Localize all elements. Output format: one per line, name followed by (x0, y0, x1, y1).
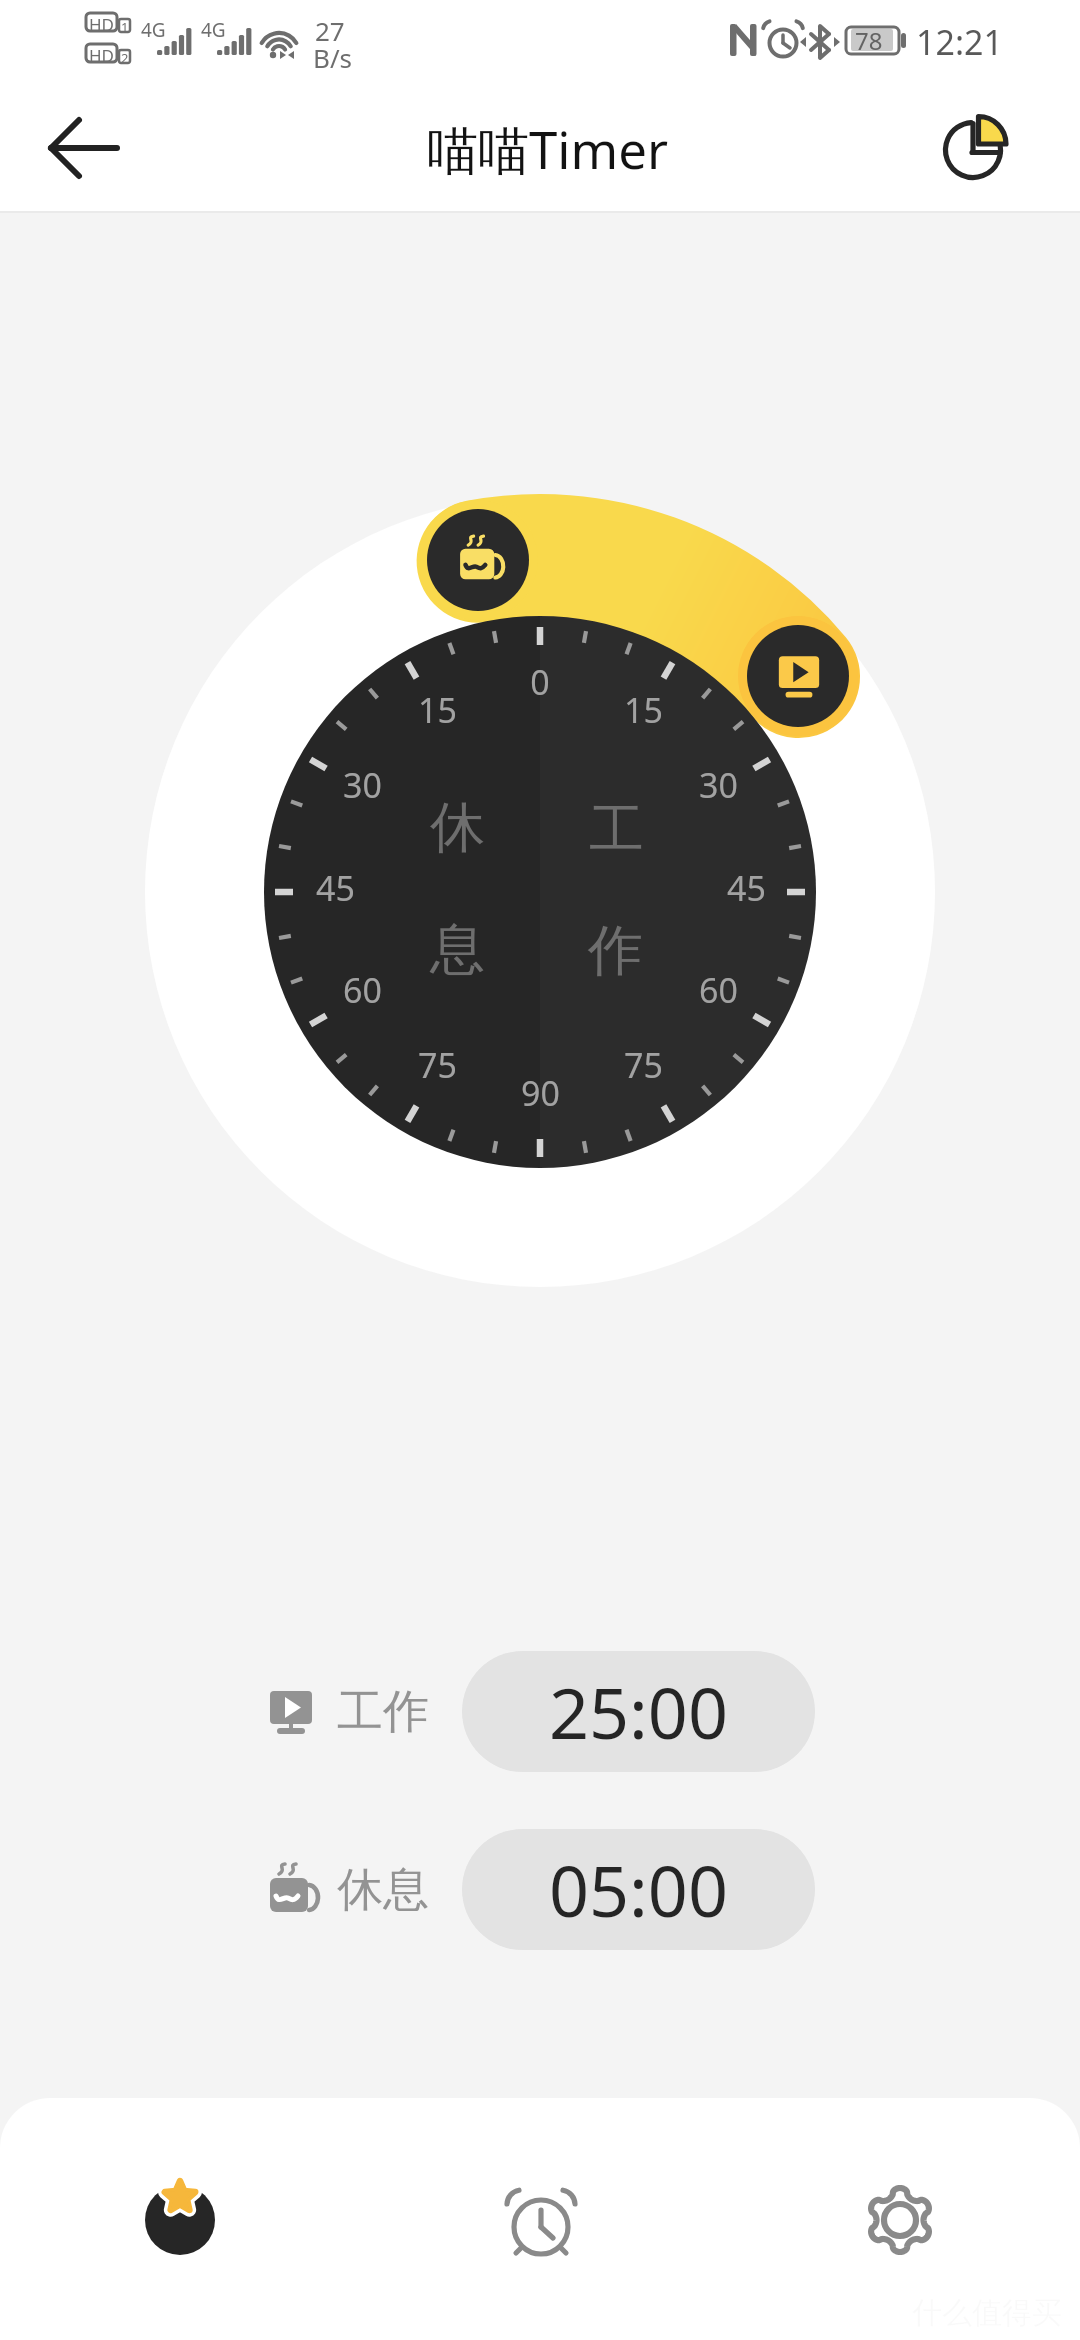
button[interactable]: Back (24, 88, 144, 208)
button[interactable]: Break duration (416, 498, 540, 622)
staticText: 60 (699, 967, 738, 1013)
staticText: 05:00 (549, 1842, 728, 1937)
staticText: 1 (121, 18, 129, 36)
staticText: 作 (588, 916, 643, 985)
staticText: HD (89, 44, 115, 67)
staticText: 0 (530, 659, 550, 705)
button[interactable]: Settings (854, 2174, 946, 2266)
button[interactable]: 休息 (262, 1819, 822, 1960)
staticText: 2 (121, 49, 129, 67)
staticText: 60 (343, 967, 382, 1013)
button[interactable]: Focus (134, 2174, 226, 2266)
staticText: 30 (699, 762, 738, 808)
button[interactable]: 工作 (262, 1641, 822, 1782)
staticText: 工 (589, 795, 644, 864)
staticText: 75 (418, 1042, 457, 1088)
staticText: 休息 (337, 1861, 429, 1919)
staticText: 15 (624, 687, 663, 733)
staticText: 78 (855, 24, 883, 57)
staticText: 90 (521, 1070, 560, 1116)
staticText: 休 (430, 793, 485, 862)
staticText: 息 (430, 915, 485, 984)
button[interactable]: Work duration (736, 614, 860, 738)
staticText: 4G (201, 17, 226, 43)
staticText: 喵喵Timer (427, 114, 669, 184)
staticText: 工作 (337, 1683, 429, 1741)
staticText: 4G (141, 17, 166, 43)
staticText: 12:21 (916, 19, 1003, 65)
staticText: 15 (418, 687, 457, 733)
staticText: HD (89, 13, 115, 36)
staticText: 45 (316, 865, 355, 911)
staticText: 30 (343, 762, 382, 808)
button[interactable]: Alarms (495, 2176, 587, 2268)
staticText: 45 (727, 865, 766, 911)
staticText: 25:00 (549, 1664, 728, 1759)
button[interactable]: Statistics (913, 88, 1033, 208)
staticText: B/s (313, 40, 353, 75)
staticText: 75 (624, 1042, 663, 1088)
staticText: 27 (315, 13, 345, 48)
